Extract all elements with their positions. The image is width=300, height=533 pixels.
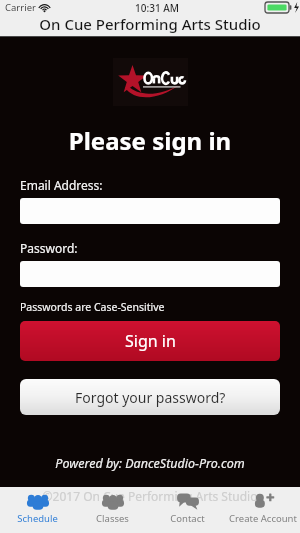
staticText: Schedule bbox=[17, 512, 58, 525]
staticText: ©2017 On Cue Performing Arts Studio bbox=[0, 488, 300, 504]
button[interactable]: People bbox=[75, 487, 150, 533]
button[interactable]: Create Account bbox=[225, 487, 300, 533]
staticText: 10:31 AM bbox=[135, 1, 179, 15]
staticText: Classes bbox=[96, 512, 129, 525]
button[interactable]: People bbox=[0, 487, 75, 533]
other: Contact bbox=[175, 492, 201, 510]
staticText: Please sign in bbox=[0, 124, 300, 157]
other: People bbox=[25, 492, 51, 510]
staticText: Passwords are Case-Sensitive bbox=[20, 300, 165, 314]
staticText: Contact bbox=[170, 512, 205, 525]
staticText: Email Address: bbox=[20, 177, 103, 193]
other: People bbox=[100, 492, 126, 510]
staticText: Powered by: DanceStudio-Pro.com bbox=[0, 455, 300, 472]
staticText: Password: bbox=[20, 240, 78, 256]
staticText: Sign in bbox=[125, 330, 176, 352]
staticText: Create Account bbox=[229, 512, 297, 525]
staticText: Forgot your password? bbox=[75, 388, 226, 407]
button[interactable]: Contact bbox=[150, 487, 225, 533]
button[interactable]: Sign in bbox=[20, 321, 280, 361]
other: Create Account bbox=[250, 492, 276, 510]
staticText: Carrier bbox=[5, 1, 36, 14]
button[interactable]: Forgot your password? bbox=[20, 379, 280, 415]
button[interactable] bbox=[20, 261, 280, 287]
button[interactable] bbox=[20, 198, 280, 224]
staticText: On Cue Performing Arts Studio bbox=[0, 14, 300, 34]
